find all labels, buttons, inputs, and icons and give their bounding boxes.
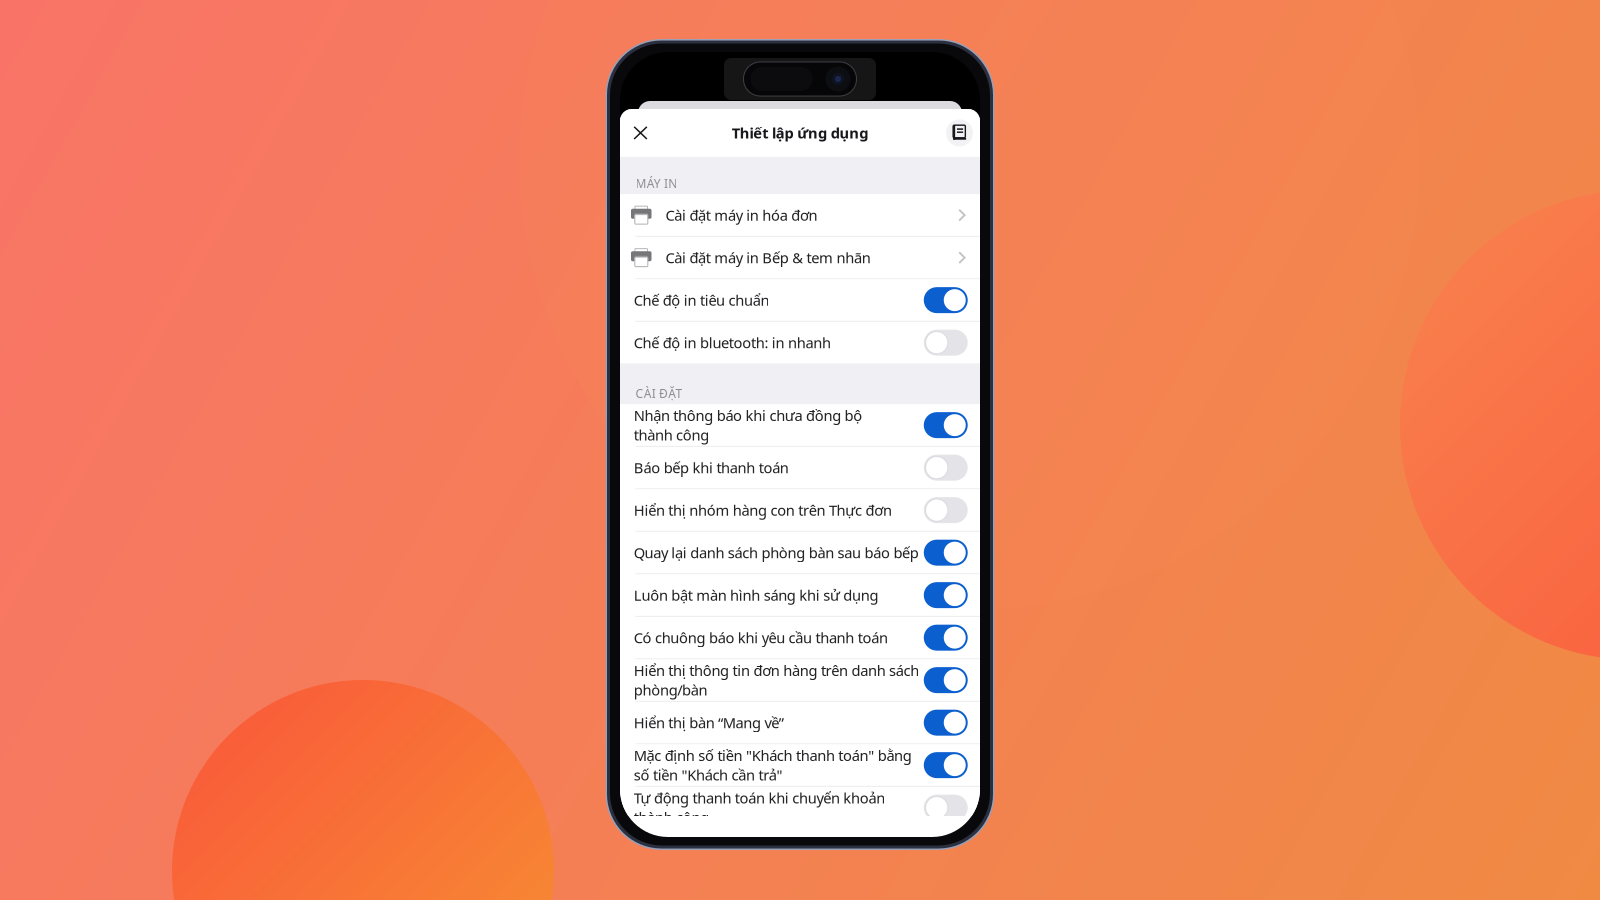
staticText: Cài đặt máy in hóa đơn <box>665 205 818 225</box>
button[interactable]: Luôn bật màn hình sáng khi sử dụng <box>620 574 980 616</box>
button[interactable]: Đóng <box>620 109 661 157</box>
staticText: CÀI ĐẶT <box>635 385 682 401</box>
staticText: Hiển thị bàn “Mang về” <box>634 713 784 732</box>
staticText: Có chuông báo khi yêu cầu thanh toán <box>634 628 888 647</box>
staticText: Chế độ in bluetooth: in nhanh <box>634 333 831 352</box>
button[interactable]: Quay lại danh sách phòng bàn sau báo bếp <box>620 532 980 573</box>
button[interactable]: Mặc định số tiền "Khách thanh toán" bằng… <box>620 744 980 786</box>
staticText: Nhận thông báo khi chưa đồng bộ thành cô… <box>634 406 862 445</box>
staticText: Mặc định số tiền "Khách thanh toán" bằng… <box>634 746 912 785</box>
staticText: Chế độ in tiêu chuẩn <box>634 290 769 310</box>
button[interactable]: Có chuông báo khi yêu cầu thanh toán <box>620 617 980 658</box>
staticText: Tự động thanh toán khi chuyển khoản thàn… <box>634 788 885 827</box>
button[interactable]: Tự động thanh toán khi chuyển khoản thàn… <box>620 787 980 828</box>
button[interactable]: Báo bếp khi thanh toán <box>620 447 980 488</box>
staticText: Báo bếp khi thanh toán <box>634 458 789 477</box>
button[interactable]: Nhận thông báo khi chưa đồng bộ thành cô… <box>620 404 980 446</box>
button[interactable]: Hiển thị bàn “Mang về” <box>620 702 980 743</box>
staticText: Thiết lập ứng dụng <box>732 123 868 143</box>
button[interactable]: Chế độ in tiêu chuẩn <box>620 279 980 321</box>
button[interactable]: Chế độ in bluetooth: in nhanh <box>620 322 980 363</box>
staticText: Luôn bật màn hình sáng khi sử dụng <box>634 585 879 605</box>
button[interactable]: Cài đặt máy in hóa đơn <box>620 194 980 236</box>
staticText: Quay lại danh sách phòng bàn sau báo bếp <box>634 543 919 562</box>
button[interactable]: Hướng dẫn sử dụng <box>939 109 980 157</box>
staticText: Hiển thị nhóm hàng con trên Thực đơn <box>634 500 892 520</box>
staticText: Hiển thị thông tin đơn hàng trên danh sá… <box>634 661 919 700</box>
button[interactable]: Hiển thị nhóm hàng con trên Thực đơn <box>620 489 980 531</box>
button[interactable]: Hiển thị thông tin đơn hàng trên danh sá… <box>620 659 980 701</box>
staticText: MÁY IN <box>635 175 677 191</box>
button[interactable]: Cài đặt máy in Bếp & tem nhãn <box>620 237 980 278</box>
staticText: Cài đặt máy in Bếp & tem nhãn <box>665 248 871 267</box>
